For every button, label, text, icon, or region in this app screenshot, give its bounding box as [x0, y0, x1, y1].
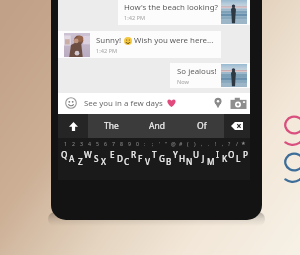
staticText: O — [228, 149, 235, 160]
staticText: 4 — [88, 140, 91, 147]
staticText: The — [104, 120, 119, 132]
staticText: : — [144, 140, 146, 147]
button[interactable]: Sunny! — [58, 31, 221, 58]
button[interactable]: Camera — [230, 97, 247, 110]
staticText: / — [236, 140, 238, 147]
staticText: L — [236, 153, 241, 164]
staticText: V — [145, 156, 151, 167]
staticText: X — [101, 156, 107, 167]
staticText: See you in a few days — [84, 98, 163, 109]
staticText: E — [110, 149, 115, 160]
staticText: . — [208, 140, 210, 147]
staticText: R — [131, 149, 137, 160]
staticText: 2 — [72, 140, 75, 147]
staticText: , — [222, 140, 224, 147]
staticText: 5 — [96, 140, 99, 147]
staticText: ? — [228, 140, 231, 147]
staticText: Y — [173, 149, 178, 160]
staticText: 0 — [136, 140, 139, 147]
staticText: 1:42 PM — [96, 47, 118, 55]
staticText: M — [207, 156, 214, 167]
staticText: How's the beach looking? — [124, 2, 219, 13]
staticText: U — [193, 149, 200, 160]
staticText: C — [124, 156, 130, 167]
staticText: Of — [197, 120, 207, 132]
staticText: H — [179, 153, 186, 164]
staticText: 1 — [64, 140, 67, 147]
staticText: P — [243, 149, 248, 160]
staticText: F — [138, 153, 143, 164]
staticText: I — [216, 149, 219, 160]
staticText: So jealous! — [177, 66, 217, 77]
staticText: W — [84, 149, 92, 160]
staticText: J — [202, 153, 205, 164]
staticText: ) — [194, 140, 196, 147]
staticText: 3 — [80, 140, 83, 147]
button[interactable]: Location — [211, 96, 225, 110]
button[interactable]: Of — [179, 114, 224, 138]
staticText: S — [94, 153, 99, 164]
staticText: ★ — [241, 140, 246, 146]
staticText: N — [186, 156, 193, 167]
staticText: @ — [171, 140, 176, 147]
button[interactable]: The — [88, 114, 134, 138]
staticText: 8 — [120, 140, 123, 147]
button[interactable]: How's the beach looking? — [118, 0, 250, 25]
staticText: Now — [177, 78, 189, 86]
staticText: # — [179, 140, 183, 147]
staticText: A — [69, 153, 75, 164]
staticText: 1:42 PM — [124, 14, 146, 22]
staticText: B — [166, 156, 172, 167]
staticText: ' — [159, 140, 161, 147]
staticText: G — [159, 153, 165, 164]
staticText: 6 — [104, 140, 107, 147]
button[interactable]: Backspace — [224, 114, 250, 138]
staticText: K — [222, 153, 228, 164]
staticText: And — [149, 120, 165, 132]
button[interactable]: And — [134, 114, 179, 138]
staticText: Q — [61, 149, 68, 160]
staticText: ; — [152, 140, 154, 147]
staticText: ( — [187, 140, 189, 147]
button[interactable]: Shift — [58, 114, 88, 138]
staticText: T — [152, 149, 157, 160]
staticText: ! — [215, 140, 217, 147]
staticText: Z — [78, 156, 83, 167]
staticText: D — [117, 153, 123, 164]
staticText: " — [165, 140, 168, 147]
button[interactable]: Emoji — [65, 97, 77, 109]
staticText: 7 — [112, 140, 115, 147]
staticText: Wish you were here... — [132, 35, 214, 46]
button[interactable]: So jealous! — [170, 63, 250, 88]
staticText: 9 — [128, 140, 131, 147]
staticText: , — [201, 140, 203, 147]
staticText: Sunny! — [96, 35, 122, 46]
